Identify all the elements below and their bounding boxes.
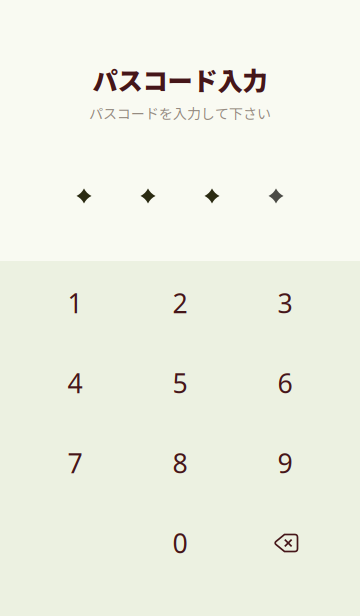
staticText: 9	[277, 445, 292, 481]
staticText: 7	[67, 445, 82, 481]
button[interactable]: Delete	[232, 503, 337, 583]
staticText: 5	[172, 365, 187, 401]
button[interactable]: 1	[22, 263, 127, 343]
button[interactable]: 8	[127, 423, 232, 503]
button[interactable]: 9	[232, 423, 337, 503]
staticText: 4	[67, 365, 82, 401]
staticText: パスコードを入力して下さい	[89, 103, 271, 123]
button[interactable]: 7	[22, 423, 127, 503]
staticText: 2	[172, 285, 187, 321]
staticText: 1	[67, 285, 82, 321]
button[interactable]: 6	[232, 343, 337, 423]
button[interactable]: 4	[22, 343, 127, 423]
staticText: 0	[172, 525, 187, 561]
staticText: 8	[172, 445, 187, 481]
button[interactable]: 0	[127, 503, 232, 583]
button[interactable]: 5	[127, 343, 232, 423]
staticText: 3	[277, 285, 292, 321]
button[interactable]: 2	[127, 263, 232, 343]
button[interactable]: 3	[232, 263, 337, 343]
staticText: パスコード入力	[92, 61, 267, 98]
staticText: 6	[277, 365, 292, 401]
